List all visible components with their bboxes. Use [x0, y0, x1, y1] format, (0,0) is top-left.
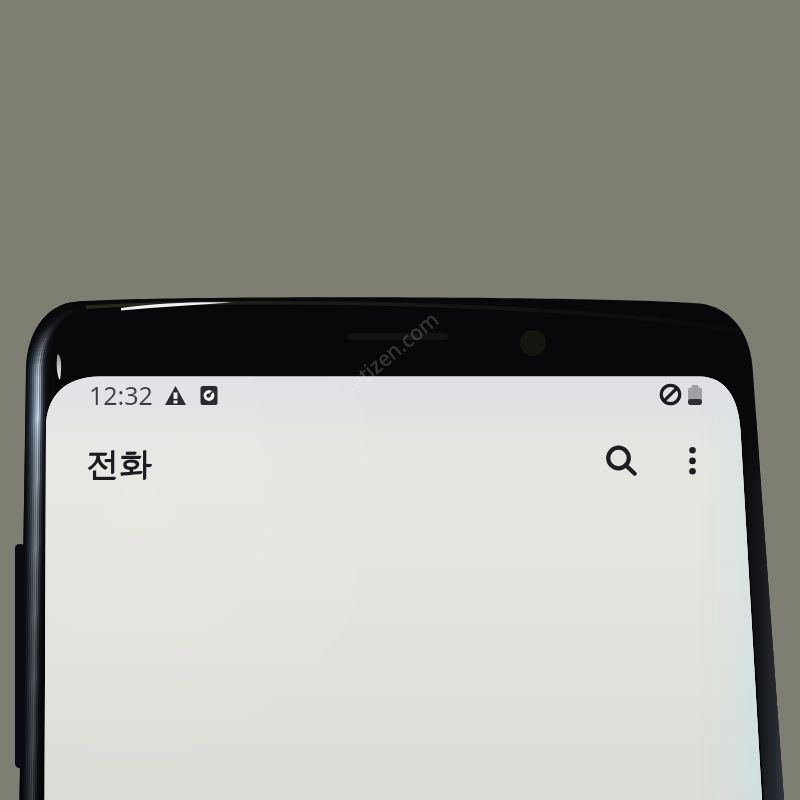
staticText: etizen.com [343, 305, 445, 396]
staticText: 전화 [87, 443, 153, 485]
staticText: 전화 [86, 444, 152, 486]
button[interactable]: Search [594, 434, 642, 482]
staticText: 전화 [86, 443, 152, 485]
button[interactable]: More options [669, 434, 717, 482]
staticText: 12:32 [89, 378, 153, 412]
